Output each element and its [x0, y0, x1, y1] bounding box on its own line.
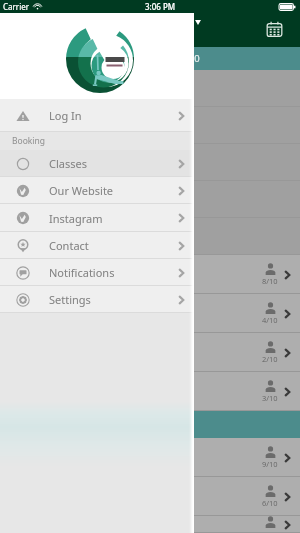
button[interactable] — [0, 218, 300, 255]
staticText: 8/10 — [262, 276, 278, 286]
staticText: Settings — [49, 292, 91, 307]
button[interactable] — [0, 144, 300, 181]
staticText: 6/10 — [262, 498, 278, 508]
button[interactable] — [0, 70, 300, 107]
staticText: 9/10 — [262, 459, 278, 469]
staticText: 3:06 PM — [145, 1, 176, 12]
button[interactable]: Settings — [0, 286, 194, 313]
button[interactable]: Instagram — [0, 204, 194, 232]
staticText: Notifications — [49, 265, 115, 280]
button[interactable]: 9/10 — [0, 438, 300, 477]
button[interactable] — [0, 181, 300, 218]
staticText: Our Website — [49, 183, 114, 198]
button[interactable]: Our Website — [0, 177, 194, 204]
staticText: Instagram — [49, 211, 103, 226]
button[interactable]: 2/10 — [0, 333, 300, 372]
staticText: Log In — [49, 108, 82, 123]
button[interactable]: Calendar — [266, 21, 283, 38]
button[interactable] — [0, 107, 300, 144]
staticText: 7/10 — [262, 529, 278, 533]
staticText: 4/10 — [262, 315, 278, 325]
staticText: Carrier — [3, 1, 30, 12]
staticText: 2/10 — [262, 354, 278, 364]
staticText: Classes — [49, 156, 87, 171]
button[interactable]: 8/10 — [0, 255, 300, 294]
button[interactable]: Notifications — [0, 259, 194, 286]
staticText: 3/10 — [262, 393, 278, 403]
button[interactable]: 4/10 — [0, 294, 300, 333]
button[interactable]: 3/10 — [0, 372, 300, 411]
staticText: Tuesday, September 10 — [96, 52, 200, 65]
staticText: Booking — [12, 135, 46, 147]
button[interactable]: 7/10 — [0, 516, 300, 533]
button[interactable]: 6/10 — [0, 477, 300, 516]
staticText: Contact — [49, 238, 89, 253]
button[interactable]: Log In — [0, 99, 194, 132]
button[interactable]: Classes — [0, 150, 194, 177]
button[interactable]: Contact — [0, 232, 194, 259]
